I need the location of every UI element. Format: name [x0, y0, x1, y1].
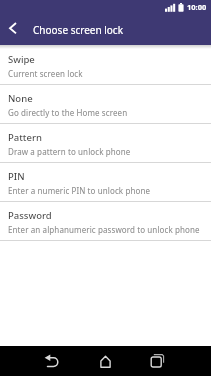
staticText: Choose screen lock [33, 23, 123, 37]
button[interactable] [71, 346, 141, 376]
button[interactable] [0, 14, 26, 45]
staticText: Pattern [8, 131, 42, 144]
staticText: Enter a numeric PIN to unlock phone [8, 185, 151, 196]
staticText: 10:00 [187, 2, 207, 12]
staticText: Enter an alphanumeric password to unlock… [8, 224, 200, 235]
staticText: Go directly to the Home screen [8, 107, 128, 118]
staticText: PIN [8, 170, 25, 183]
staticText: None [8, 92, 33, 105]
staticText: Current screen lock [8, 68, 83, 79]
staticText: Swipe [8, 53, 35, 66]
button[interactable]: None [0, 85, 211, 123]
staticText: Password [8, 209, 52, 222]
button[interactable]: Password [0, 202, 211, 240]
staticText: Draw a pattern to unlock phone [8, 146, 131, 157]
button[interactable] [0, 346, 71, 376]
button[interactable]: Pattern [0, 124, 211, 162]
button[interactable]: PIN [0, 163, 211, 201]
button[interactable] [141, 346, 211, 376]
button[interactable]: Swipe [0, 46, 211, 84]
